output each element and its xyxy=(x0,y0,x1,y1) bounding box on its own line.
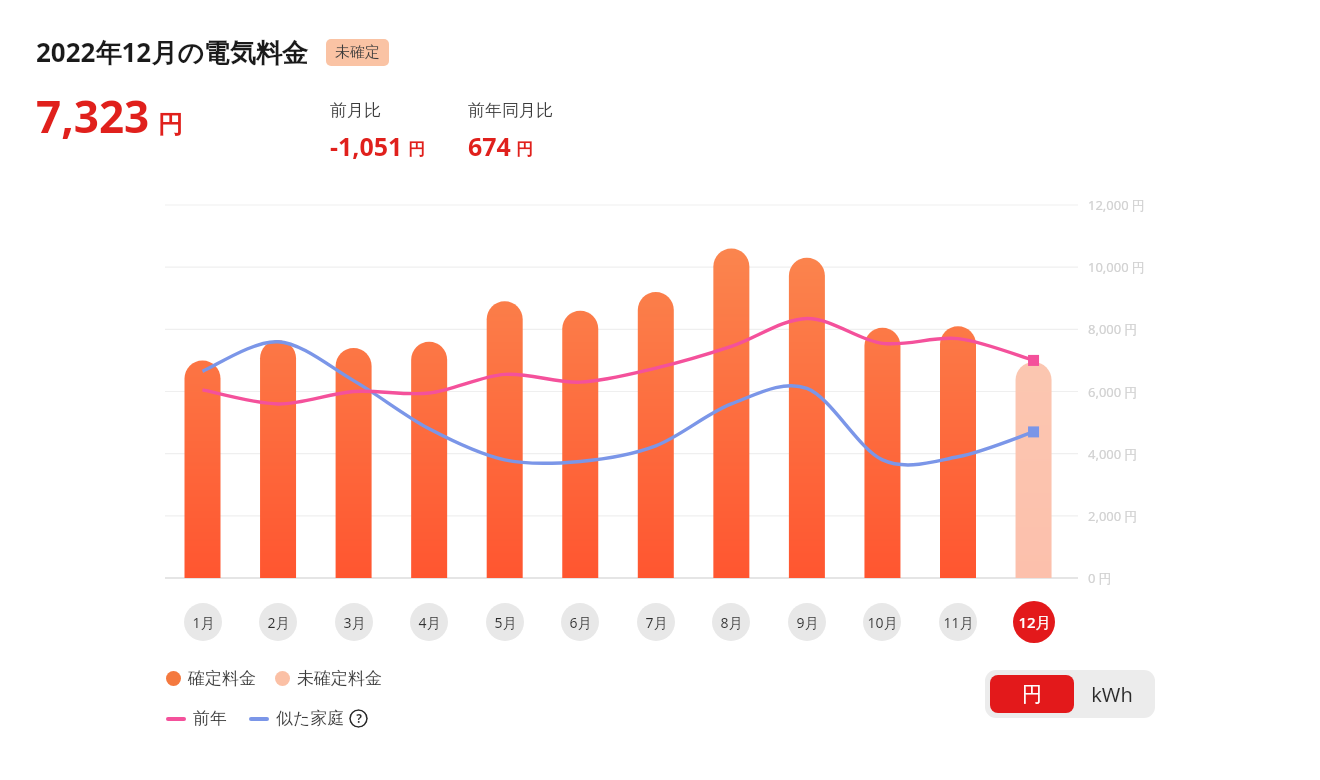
staticText: 1月 xyxy=(192,613,215,632)
staticText: 7月 xyxy=(645,613,668,632)
staticText: -1,051 xyxy=(330,129,403,163)
staticText: 2月 xyxy=(267,613,290,632)
button[interactable]: 未確定 xyxy=(326,39,389,66)
staticText: 12,000 円 xyxy=(1088,196,1146,214)
staticText: 前年同月比 xyxy=(468,100,553,121)
button[interactable]: 11月 xyxy=(939,603,977,641)
staticText: 12月 xyxy=(1018,612,1051,632)
button[interactable]: 1月 xyxy=(184,603,222,641)
staticText: 6月 xyxy=(569,613,592,632)
button[interactable]: 未確定料金 xyxy=(275,668,382,689)
staticText: 2022年12月の電気料金 xyxy=(36,34,308,70)
staticText: 未確定料金 xyxy=(297,668,382,689)
button[interactable]: 7月 xyxy=(637,603,675,641)
button[interactable]: 5月 xyxy=(486,603,524,641)
button[interactable]: 2月 xyxy=(259,603,297,641)
staticText: 確定料金 xyxy=(188,668,256,689)
staticText: 円 xyxy=(1022,682,1042,707)
staticText: 674 xyxy=(468,129,511,163)
staticText: 8月 xyxy=(720,613,743,632)
staticText: 11月 xyxy=(943,613,974,632)
staticText: 2,000 円 xyxy=(1088,507,1138,525)
button[interactable]: 確定料金 xyxy=(166,668,256,689)
button[interactable]: 10月 xyxy=(863,603,901,641)
staticText: kWh xyxy=(1091,681,1133,708)
staticText: 前月比 xyxy=(330,100,381,121)
staticText: 円 xyxy=(158,109,183,140)
staticText: 10,000 円 xyxy=(1088,258,1146,276)
button[interactable]: 前年 xyxy=(166,708,227,729)
staticText: 円 xyxy=(408,139,425,160)
staticText: 9月 xyxy=(796,613,819,632)
staticText: 未確定 xyxy=(335,43,380,62)
staticText: 3月 xyxy=(343,613,366,632)
staticText: 4月 xyxy=(418,613,441,632)
staticText: 5月 xyxy=(494,613,517,632)
staticText: 10月 xyxy=(867,613,898,632)
staticText: 7,323 xyxy=(36,86,150,146)
button[interactable]: 似た家庭についてのヘルプ xyxy=(349,709,368,728)
button[interactable]: 円 xyxy=(990,675,1074,713)
button[interactable]: 似た家庭 xyxy=(249,708,345,729)
staticText: 4,000 円 xyxy=(1088,445,1138,463)
staticText: 似た家庭 xyxy=(276,708,345,729)
staticText: 6,000 円 xyxy=(1088,383,1138,401)
button[interactable]: 12月 xyxy=(1013,601,1055,643)
staticText: 前年 xyxy=(193,708,227,729)
button[interactable]: 4月 xyxy=(410,603,448,641)
staticText: 円 xyxy=(516,139,533,160)
button[interactable]: 3月 xyxy=(335,603,373,641)
button[interactable]: kWh xyxy=(1074,675,1150,713)
staticText: ? xyxy=(356,710,362,726)
button[interactable]: 8月 xyxy=(712,603,750,641)
button[interactable]: 6月 xyxy=(561,603,599,641)
staticText: 8,000 円 xyxy=(1088,320,1138,338)
button[interactable]: 9月 xyxy=(788,603,826,641)
staticText: 0 円 xyxy=(1088,569,1112,587)
